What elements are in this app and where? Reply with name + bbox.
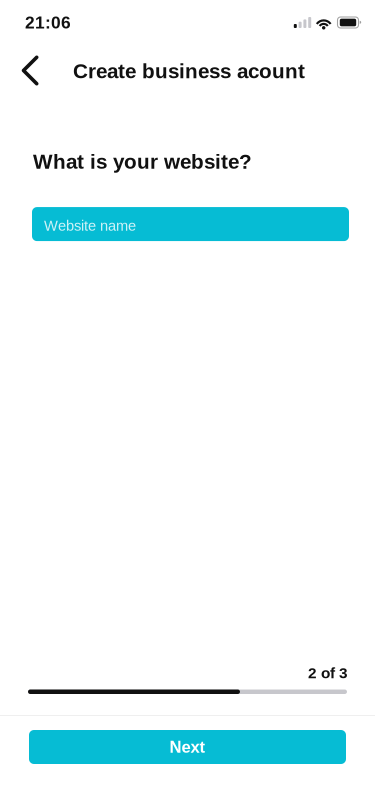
staticText: 21:06 [25,13,71,32]
staticText: Next [169,738,205,756]
staticText: Website name [44,217,136,234]
button[interactable]: Next [29,730,346,764]
staticText: 2 of 3 [308,664,348,681]
staticText: What is your website? [33,150,252,173]
button[interactable]: Back [8,45,52,91]
staticText: Create business acount [73,59,305,83]
button[interactable]: Website name [32,207,349,241]
